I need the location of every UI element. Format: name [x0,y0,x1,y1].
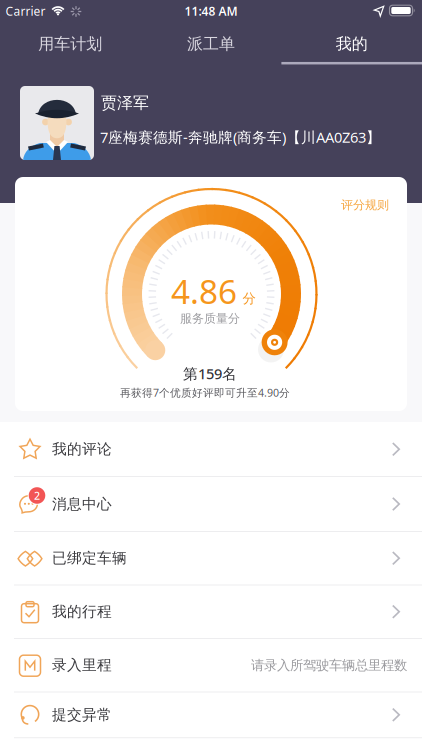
staticText: 提交异常 [52,706,112,724]
button[interactable]: 我的行程 [0,585,422,638]
button[interactable]: 录入里程 [0,638,422,692]
button[interactable]: 提交异常 [0,692,422,738]
staticText: 请录入所驾驶车辆总里程数 [251,657,407,673]
staticText: 消息中心 [52,495,112,513]
staticText: 评分规则 [341,198,389,212]
staticText: Carrier [5,3,45,19]
staticText: 我的 [336,34,368,54]
button[interactable]: 已绑定车辆 [0,531,422,585]
staticText: 分 [242,290,255,307]
staticText: 我的行程 [52,603,112,621]
staticText: 已绑定车辆 [52,549,127,567]
staticText: 4.86 [171,269,237,313]
staticText: 贾泽军 [101,93,149,113]
staticText: 2 [34,488,40,503]
staticText: 我的评论 [52,440,112,458]
staticText: 第159名 [183,364,237,383]
button[interactable]: 我的评论 [0,422,422,476]
button[interactable]: 我的 [281,27,422,61]
button[interactable]: 评分规则 [341,198,389,212]
button[interactable]: 用车计划 [0,27,141,61]
staticText: 用车计划 [38,34,102,54]
button[interactable]: 2 [0,476,422,531]
staticText: 再获得7个优质好评即可升至4.90分 [120,385,290,400]
staticText: 录入里程 [52,656,112,674]
staticText: 派工单 [187,34,235,54]
button[interactable]: 派工单 [141,27,281,61]
staticText: 7座梅赛德斯-奔驰牌(商务车)【川AA0Z63】 [100,127,381,147]
staticText: 服务质量分 [180,311,240,326]
staticText: 11:48 AM [184,3,237,19]
